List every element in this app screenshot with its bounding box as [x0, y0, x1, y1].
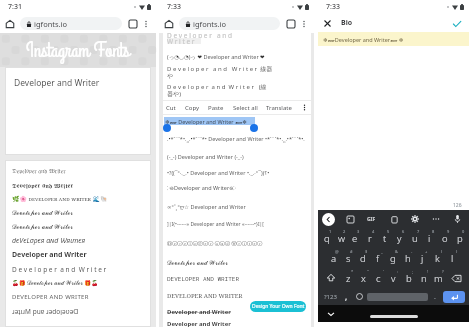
- staticText: c: [376, 272, 381, 285]
- button[interactable]: l: [445, 248, 460, 268]
- button[interactable]: Emoji: [352, 288, 366, 305]
- button[interactable]: ჻᪥Developer and Writer᪥჻: [167, 180, 309, 196]
- button[interactable]: Period: [429, 288, 441, 305]
- button[interactable]: Home: [3, 17, 17, 31]
- button[interactable]: 𝓓𝓮𝓿𝓮𝓵𝓸𝓹𝓮𝓻 𝓪𝓷𝓭 𝓦𝓻𝓲𝓽𝓮𝓻: [167, 255, 309, 271]
- button[interactable]: .•*´¨`*•.¸¸.•*´¨`*• Developer and Writer…: [167, 128, 309, 149]
- staticText: 7:33: [167, 2, 181, 12]
- button[interactable]: a: [327, 248, 341, 268]
- button[interactable]: Comma: [340, 288, 352, 305]
- staticText: *: [351, 269, 354, 274]
- button[interactable]: Translate: [265, 104, 293, 112]
- button[interactable]: DEVELOPER AND WRITER: [12, 290, 148, 304]
- staticText: h: [405, 252, 411, 265]
- button[interactable]: y: [392, 228, 407, 248]
- button[interactable]: 𝕯𝖊𝖛𝖊𝖑𝖔𝖕𝖊𝖗 𝖆𝖓𝖉 𝖂𝖗𝖎𝖙𝖊𝖗: [12, 178, 148, 192]
- button[interactable]: ?123: [320, 288, 340, 305]
- button[interactable]: Settings: [409, 213, 421, 225]
- button[interactable]: Space: [367, 293, 428, 301]
- button[interactable]: v: [386, 268, 401, 288]
- button[interactable]: GIF: [365, 214, 378, 225]
- staticText: #: [350, 249, 353, 254]
- staticText: ;: [412, 269, 414, 274]
- button[interactable]: q: [320, 228, 334, 248]
- button[interactable]: i: [422, 228, 437, 248]
- button[interactable]: z: [341, 268, 356, 288]
- staticText: D e v e l o p e r a n d W r i t e r: [12, 265, 107, 274]
- button[interactable]: Done: [450, 17, 463, 30]
- button[interactable]: 🍒🎁 𝓓𝓮𝓿𝓮𝓵𝓸𝓹𝓮𝓻 𝓪𝓷𝓭 𝓦𝓻𝓲𝓽𝓮𝓻 🎁🍒: [12, 276, 148, 290]
- button[interactable]: n: [416, 268, 431, 288]
- button[interactable]: •?((¯°·._.• Developer and Writer •._.·°¯…: [167, 164, 309, 180]
- button[interactable]: o: [437, 228, 452, 248]
- button[interactable]: Clipboard: [388, 213, 400, 225]
- button[interactable]: Tabs: [284, 17, 297, 30]
- button[interactable]: Copy: [184, 104, 201, 112]
- button[interactable]: ∞°˚˳°ღ☆ Developer and Writer: [167, 196, 309, 216]
- button[interactable]: DEVELOPER AND WRITER: [167, 271, 309, 287]
- button[interactable]: ❄ண Developer and Writer ண❄: [164, 117, 255, 125]
- button[interactable]: ]|I{•------» Developer and Writer «-----…: [167, 216, 309, 233]
- button[interactable]: x: [356, 268, 371, 288]
- button[interactable]: 𝓓𝓮𝓿𝓮𝓵𝓸𝓹𝓮𝓻 𝓪𝓷𝓭 𝓦𝓻𝓲𝓽𝓮𝓻: [12, 206, 148, 220]
- button[interactable]: dєVєLσρєя αɴd Ѡяιтєя: [12, 234, 148, 248]
- button[interactable]: w: [334, 228, 348, 248]
- button[interactable]: Back: [322, 213, 335, 226]
- staticText: a: [331, 252, 337, 265]
- button[interactable]: Enter: [443, 291, 465, 303]
- button[interactable]: Paste: [207, 104, 225, 112]
- button[interactable]: More: [430, 213, 442, 225]
- button[interactable]: g: [385, 248, 400, 268]
- button[interactable]: Ⓓⓔⓥⓔⓛⓞⓟⓔⓡ ⓐⓝⓓ Ⓦⓡⓘⓣⓔⓡ: [167, 233, 309, 255]
- button[interactable]: Select all: [232, 104, 259, 112]
- button[interactable]: Tabs: [126, 17, 139, 30]
- button[interactable]: D e v e l o p e r a n d W r i t e r: [12, 262, 148, 276]
- button[interactable]: ɹǝʇıɹM puɐ ɹǝdoןǝʋǝᗡ: [12, 304, 148, 318]
- button[interactable]: More options: [298, 18, 310, 30]
- button[interactable]: Home: [162, 17, 176, 31]
- button[interactable]: t: [377, 228, 392, 248]
- staticText: b: [406, 272, 412, 285]
- button[interactable]: 𝓓𝓮𝓿𝓮𝓵𝓸𝓹𝓮𝓻 𝓪𝓷𝓭 𝓦𝓻𝓲𝓽𝓮𝓻: [12, 220, 148, 234]
- button[interactable]: d: [355, 248, 370, 268]
- button[interactable]: Shift: [320, 268, 341, 288]
- button[interactable]: Developer and Writer: [167, 304, 309, 320]
- staticText: Select all: [233, 104, 258, 112]
- button[interactable]: Cut: [165, 104, 177, 112]
- button[interactable]: 🌿🌸 ᴅᴇνᴇʟᴏᴘᴇʀ ᴀɴᴅ ᴡʀɪᴛᴇʀ 🌊🐚: [12, 192, 148, 206]
- button[interactable]: r: [362, 228, 377, 248]
- button[interactable]: More options: [140, 18, 152, 30]
- button[interactable]: e: [348, 228, 362, 248]
- button[interactable]: igfonts.io: [179, 17, 280, 30]
- button[interactable]: Stickers: [344, 213, 356, 225]
- staticText: Instagram Fonts: [26, 37, 130, 64]
- button[interactable]: c: [371, 268, 386, 288]
- button[interactable]: u: [407, 228, 422, 248]
- staticText: j: [421, 252, 424, 265]
- button[interactable]: Close: [321, 17, 334, 30]
- button[interactable]: Backspace: [446, 268, 467, 288]
- button[interactable]: Hide keyboard: [326, 309, 336, 319]
- button[interactable]: More: [300, 103, 309, 112]
- button[interactable]: Developer and Writer: [167, 320, 309, 327]
- staticText: ": [367, 269, 369, 274]
- button[interactable]: Developer and Writer: [12, 248, 148, 262]
- button[interactable]: DEVELOPER AND WRITER: [167, 287, 309, 304]
- staticText: !: [427, 269, 429, 274]
- button[interactable]: igfonts.io: [20, 17, 122, 30]
- button[interactable]: Voice input: [451, 213, 463, 225]
- button[interactable]: h: [400, 248, 415, 268]
- button[interactable]: m: [431, 268, 446, 288]
- staticText: 8: [432, 229, 435, 234]
- button[interactable]: f: [370, 248, 385, 268]
- button[interactable]: Design Your Own Font: [250, 301, 306, 312]
- button[interactable]: s: [341, 248, 355, 268]
- button[interactable]: j: [415, 248, 430, 268]
- staticText: 🌿🌸 ᴅᴇνᴇʟᴏᴘᴇʀ ᴀɴᴅ ᴡʀɪᴛᴇʀ 🌊🐚: [12, 195, 108, 203]
- button[interactable]: p: [452, 228, 467, 248]
- staticText: (: [441, 249, 443, 254]
- button[interactable]: 𝔇𝔢𝔳𝔢𝔩𝔬𝔭𝔢𝔯 𝔞𝔫𝔡 𝔚𝔯𝔦𝔱𝔢𝔯: [12, 164, 148, 178]
- button[interactable]: (-_-) Developer and Writer (-_-): [167, 149, 309, 164]
- button[interactable]: k: [430, 248, 445, 268]
- button[interactable]: b: [401, 268, 416, 288]
